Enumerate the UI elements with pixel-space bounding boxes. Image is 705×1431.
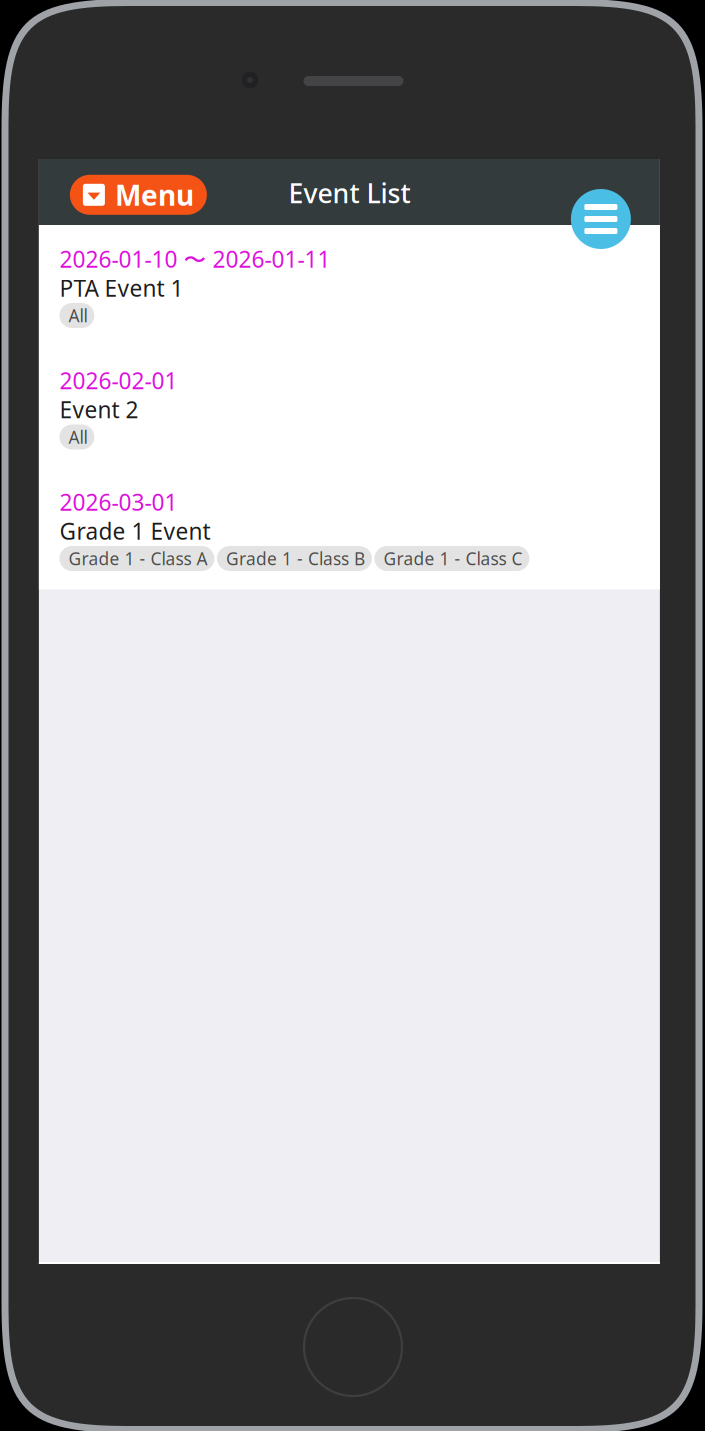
button[interactable]: Menu: [70, 175, 207, 215]
staticText: Event 2: [59, 394, 138, 424]
staticText: PTA Event 1: [59, 273, 183, 303]
staticText: All: [68, 425, 87, 448]
staticText: Event List: [288, 175, 410, 211]
button[interactable]: 2026-02-01: [39, 346, 660, 468]
staticText: 2026-03-01: [59, 487, 177, 517]
staticText: 2026-01-10 〜 2026-01-11: [59, 244, 330, 274]
staticText: Grade 1 Event: [59, 516, 210, 546]
staticText: 2026-02-01: [59, 365, 177, 395]
button[interactable]: Open menu: [571, 189, 631, 249]
staticText: Menu: [115, 176, 194, 213]
staticText: Grade 1 - Class A: [68, 547, 207, 570]
staticText: Grade 1 - Class C: [383, 547, 522, 570]
button[interactable]: 2026-03-01: [39, 468, 660, 589]
staticText: All: [68, 304, 87, 327]
button[interactable]: 2026-01-10 〜 2026-01-11: [39, 225, 660, 346]
staticText: Grade 1 - Class B: [226, 547, 365, 570]
